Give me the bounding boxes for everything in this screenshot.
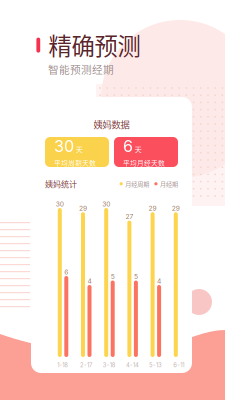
staticText: 4-14 xyxy=(126,361,139,369)
staticText: 平均周期天数 xyxy=(54,158,96,168)
staticText: 30 xyxy=(54,136,74,156)
staticText: 29 xyxy=(79,204,87,212)
staticText: 30 xyxy=(56,200,64,208)
staticText: 1-18 xyxy=(57,361,68,369)
staticText: 5 xyxy=(134,272,138,281)
staticText: 精确预测 xyxy=(48,28,140,62)
staticText: 6 xyxy=(64,268,68,276)
staticText: 4 xyxy=(87,277,91,285)
staticText: 月经周期 xyxy=(125,179,149,188)
staticText: 4 xyxy=(157,277,161,285)
staticText: 6 xyxy=(123,136,133,156)
staticText: 29 xyxy=(149,204,157,212)
staticText: 姨妈数据 xyxy=(93,117,129,131)
staticText: 29 xyxy=(172,204,180,212)
staticText: 智能预测经期 xyxy=(48,61,114,77)
staticText: 3-18 xyxy=(103,361,116,369)
staticText: 6-11 xyxy=(173,361,184,369)
staticText: 30 xyxy=(102,200,110,208)
staticText: 2-17 xyxy=(80,361,92,369)
staticText: 平均月经天数 xyxy=(123,158,165,168)
staticText: 月经期 xyxy=(160,179,178,188)
staticText: 5 xyxy=(111,272,115,281)
staticText: 天 xyxy=(75,144,82,154)
staticText: 5-13 xyxy=(149,361,162,369)
staticText: 天 xyxy=(134,144,141,154)
staticText: 姨妈统计 xyxy=(45,178,77,190)
staticText: 27 xyxy=(125,213,133,221)
